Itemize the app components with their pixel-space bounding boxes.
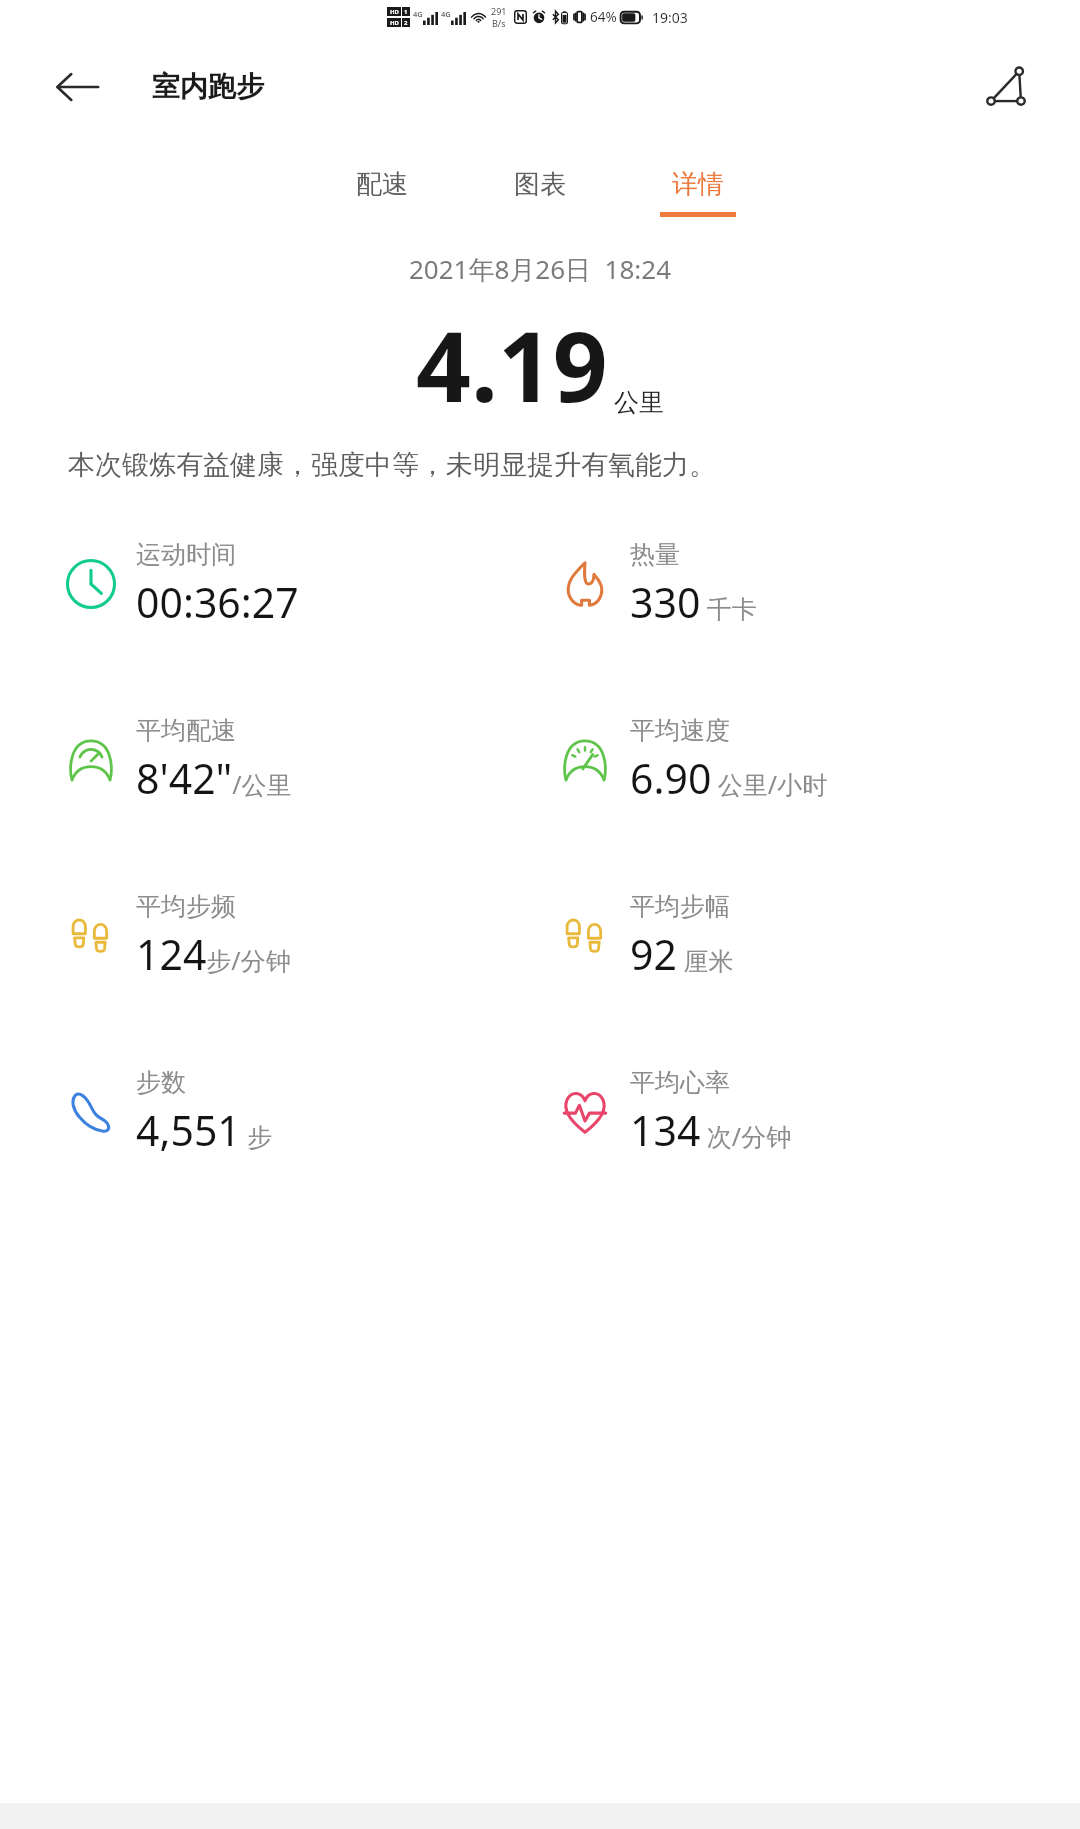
button[interactable]: 详情 — [650, 168, 746, 217]
staticText: 平均步频 — [136, 891, 236, 922]
button[interactable]: 平均速度 — [552, 672, 1080, 848]
button[interactable]: Share — [974, 55, 1038, 119]
staticText: HD — [390, 8, 399, 16]
button[interactable]: 平均心率 — [552, 1024, 1080, 1200]
staticText: 4G — [413, 9, 423, 19]
staticText: 公里 — [614, 387, 664, 418]
button[interactable]: 热量 — [552, 496, 1080, 672]
staticText: 1 — [404, 8, 408, 16]
staticText: 平均配速 — [136, 715, 236, 746]
staticText: 详情 — [672, 168, 724, 201]
staticText: 330 千卡 — [630, 574, 757, 630]
staticText: 4G — [441, 9, 451, 19]
staticText: 64% — [590, 8, 617, 26]
staticText: HD — [390, 19, 399, 27]
staticText: 配速 — [356, 168, 408, 201]
staticText: 图表 — [514, 168, 566, 201]
staticText: 92 厘米 — [630, 926, 734, 982]
button[interactable]: 平均步幅 — [552, 848, 1080, 1024]
staticText: 6.90 公里/小时 — [630, 750, 828, 806]
button[interactable]: 平均步频 — [58, 848, 540, 1024]
button[interactable]: Back — [46, 55, 110, 119]
staticText: 4,551 步 — [136, 1102, 273, 1158]
staticText: 2 — [404, 19, 408, 27]
button[interactable]: 平均配速 — [58, 672, 540, 848]
staticText: 291 — [491, 5, 507, 17]
staticText: 00:36:27 — [136, 574, 299, 630]
staticText: 2021年8月26日 18:24 — [409, 251, 672, 287]
button[interactable]: 运动时间 — [58, 496, 540, 672]
staticText: B/s — [492, 17, 506, 29]
staticText: 8'42"/公里 — [136, 750, 292, 806]
staticText: 19:03 — [652, 8, 688, 27]
button[interactable]: 步数 — [58, 1024, 540, 1200]
staticText: 134 次/分钟 — [630, 1102, 792, 1158]
staticText: 热量 — [630, 539, 680, 570]
staticText: 平均速度 — [630, 715, 730, 746]
staticText: 本次锻炼有益健康，强度中等，未明显提升有氧能力。 — [68, 448, 1022, 482]
button[interactable]: 图表 — [492, 168, 588, 217]
button[interactable]: 配速 — [334, 168, 430, 217]
staticText: 4.19 — [416, 299, 608, 430]
staticText: 平均心率 — [630, 1067, 730, 1098]
staticText: 运动时间 — [136, 539, 236, 570]
staticText: 平均步幅 — [630, 891, 730, 922]
staticText: 室内跑步 — [152, 69, 264, 104]
staticText: 124步/分钟 — [136, 926, 291, 982]
staticText: 步数 — [136, 1067, 186, 1098]
